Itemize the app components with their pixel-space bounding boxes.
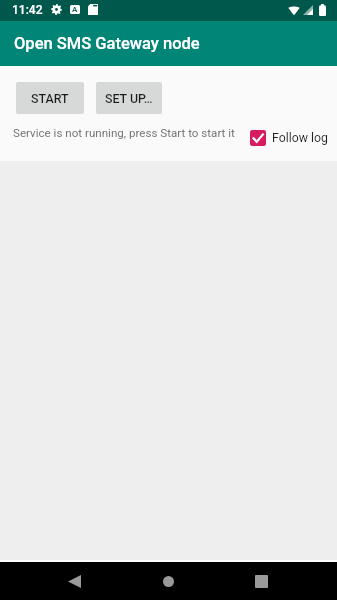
button[interactable]: Recents <box>234 562 288 600</box>
button[interactable]: START <box>16 82 84 114</box>
staticText: START <box>31 91 69 106</box>
staticText: Service is not running, press Start to s… <box>13 126 235 140</box>
button[interactable]: Follow log <box>250 130 328 146</box>
button[interactable]: Home <box>141 562 195 600</box>
staticText: SET UP… <box>105 91 153 106</box>
button[interactable]: SET UP… <box>96 82 162 114</box>
staticText: Follow log <box>272 131 328 145</box>
staticText: A <box>72 5 78 14</box>
staticText: Open SMS Gateway node <box>14 34 200 53</box>
button[interactable]: Back <box>47 562 101 600</box>
staticText: 11:42 <box>12 3 43 17</box>
